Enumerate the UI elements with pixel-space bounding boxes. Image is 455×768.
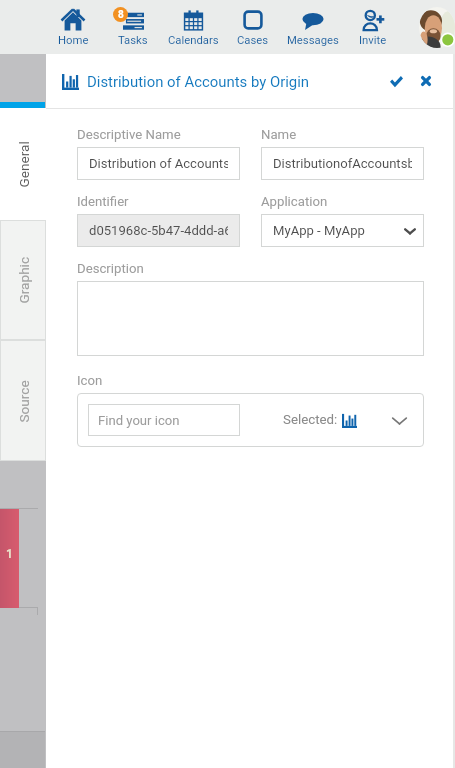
- button[interactable]: Calendars: [163, 0, 223, 54]
- button[interactable]: Expand icon picker: [386, 407, 412, 433]
- button[interactable]: Home: [43, 0, 103, 54]
- button[interactable]: DistributionofAccountsbyOr: [273, 147, 412, 180]
- button[interactable]: Confirm: [383, 68, 409, 94]
- staticText: Descriptive Name: [77, 127, 181, 142]
- staticText: Distribution of Accounts by: [89, 156, 228, 171]
- staticText: Tasks: [118, 34, 148, 47]
- staticText: Invite: [359, 34, 387, 47]
- staticText: 8: [118, 9, 124, 21]
- button[interactable]: Invite: [343, 0, 403, 54]
- staticText: MyApp - MyApp: [273, 223, 365, 238]
- button[interactable]: d051968c-5b47-4ddd-a69: [89, 214, 228, 247]
- button[interactable]: MyApp - MyApp: [273, 214, 416, 247]
- staticText: Name: [261, 127, 297, 142]
- staticText: General: [15, 140, 31, 187]
- button[interactable]: 8: [103, 0, 163, 54]
- button[interactable]: [77, 281, 424, 356]
- staticText: Graphic: [15, 256, 31, 303]
- staticText: Home: [58, 34, 89, 47]
- staticText: DistributionofAccountsbyOr: [273, 156, 412, 171]
- staticText: 1: [6, 547, 13, 561]
- staticText: Distribution of Accounts by Origin: [87, 73, 310, 90]
- staticText: Cases: [237, 34, 269, 47]
- button[interactable]: Close: [413, 68, 439, 94]
- button[interactable]: Distribution of Accounts by: [89, 147, 228, 180]
- staticText: Calendars: [168, 34, 219, 47]
- staticText: Application: [261, 194, 328, 209]
- button[interactable]: Messages: [283, 0, 343, 54]
- button[interactable]: Source: [0, 340, 46, 461]
- staticText: Identifier: [77, 194, 129, 209]
- staticText: d051968c-5b47-4ddd-a69: [89, 223, 228, 238]
- button[interactable]: Profile: [419, 7, 455, 48]
- button[interactable]: Cases: [223, 0, 283, 54]
- staticText: Source: [15, 379, 31, 422]
- button[interactable]: General: [0, 108, 46, 220]
- staticText: Selected:: [283, 412, 338, 428]
- staticText: Find your icon: [98, 413, 180, 428]
- staticText: Icon: [77, 373, 103, 388]
- staticText: Description: [77, 261, 144, 276]
- button[interactable]: Graphic: [0, 220, 46, 340]
- button[interactable]: Find your icon: [98, 404, 230, 436]
- staticText: Messages: [287, 34, 339, 47]
